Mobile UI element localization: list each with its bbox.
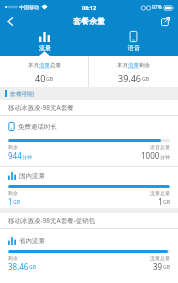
staticText: GB [29, 264, 36, 271]
staticText: GB [46, 76, 53, 83]
button[interactable]: 本月流量剩余 [89, 56, 178, 87]
staticText: 39 [153, 261, 163, 272]
staticText: 套餐余量 [73, 16, 105, 26]
button[interactable]: 移动冰激凌-98元A套餐 [0, 100, 178, 208]
button[interactable]: 流量 [0, 28, 89, 56]
staticText: 套餐明细 [10, 90, 34, 98]
staticText: 语音总量 [150, 144, 170, 150]
button[interactable]: 本月流量总量 [0, 56, 88, 87]
staticText: 39.46 [118, 72, 142, 84]
staticText: 944 [8, 150, 22, 161]
staticText: 38.46 [8, 261, 29, 272]
button[interactable]: 语音 [89, 28, 178, 56]
staticText: 本月流量剩余 [117, 62, 150, 69]
staticText: 中国移动 [19, 4, 39, 10]
staticText: 1 [8, 196, 13, 207]
staticText: 本月流量总量 [28, 62, 61, 69]
staticText: 流量总量 [150, 190, 170, 196]
staticText: 免费通话时长 [18, 123, 57, 131]
button[interactable] [0, 14, 20, 28]
staticText: 1 [158, 196, 163, 207]
button[interactable]: 移动冰激凌-98元A套餐-促销包 [0, 213, 178, 283]
staticText: 97% [152, 4, 162, 11]
staticText: GB [13, 199, 20, 206]
staticText: GB [163, 264, 170, 271]
staticText: GB [142, 76, 149, 83]
staticText: 语音 [128, 44, 140, 52]
staticText: 省内流量 [19, 237, 45, 245]
staticText: 分钟 [22, 154, 32, 160]
staticText: 流量总量 [150, 255, 170, 261]
staticText: 1000 [141, 150, 160, 161]
staticText: 40 [35, 72, 46, 84]
staticText: 分钟 [160, 154, 170, 160]
staticText: 06:12 [82, 4, 97, 11]
staticText: 剩余 [8, 144, 18, 150]
staticText: 国内流量 [19, 172, 45, 180]
staticText: 流量 [39, 44, 51, 52]
staticText: 剩余 [8, 255, 18, 261]
staticText: 移动冰激凌-98元A套餐-促销包 [8, 216, 96, 225]
staticText: GB [163, 199, 170, 206]
staticText: 剩余 [8, 190, 18, 196]
button[interactable] [158, 14, 172, 28]
staticText: 移动冰激凌-98元A套餐 [8, 103, 74, 112]
